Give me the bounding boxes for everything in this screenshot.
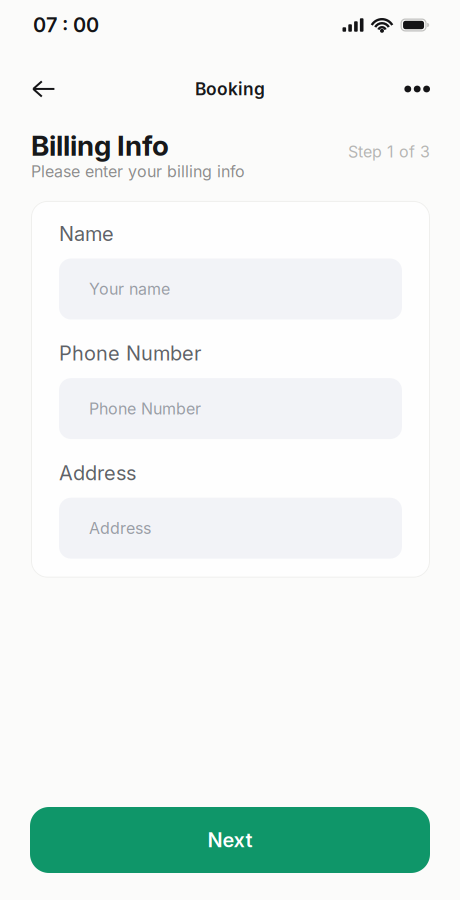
- button[interactable]: Back: [32, 81, 55, 97]
- staticText: Your name: [89, 280, 170, 298]
- staticText: 07 : 00: [33, 13, 99, 37]
- staticText: Phone Number: [59, 341, 201, 365]
- staticText: Address: [59, 461, 136, 485]
- staticText: Phone Number: [89, 399, 201, 418]
- staticText: Please enter your billing info: [31, 162, 245, 181]
- staticText: Address: [89, 519, 151, 538]
- staticText: Billing Info: [31, 129, 169, 162]
- staticText: Name: [59, 222, 114, 245]
- staticText: Next: [207, 828, 252, 852]
- button[interactable]: Your name: [59, 258, 402, 319]
- button[interactable]: Next: [30, 807, 430, 873]
- button[interactable]: More options: [404, 86, 430, 92]
- staticText: Booking: [195, 79, 265, 99]
- button[interactable]: Address: [59, 498, 402, 559]
- staticText: Step 1 of 3: [348, 142, 430, 161]
- button[interactable]: Phone Number: [59, 378, 402, 439]
